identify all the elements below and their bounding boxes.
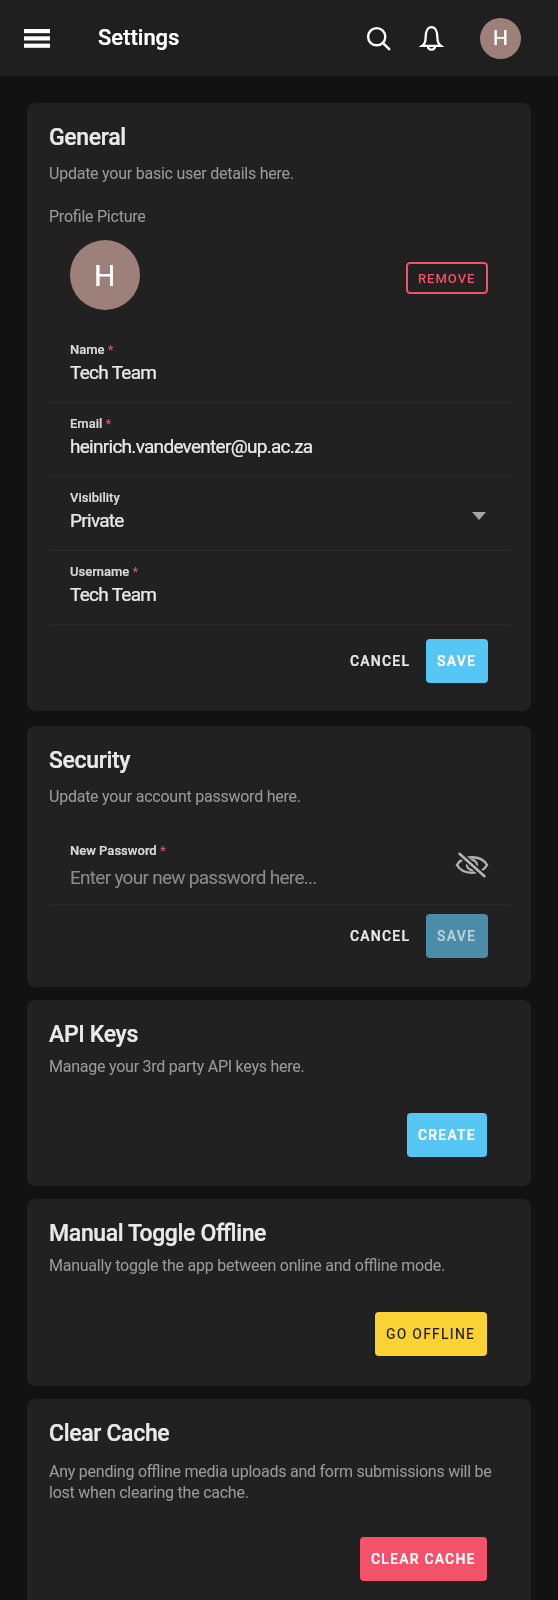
staticText: heinrich.vandeventer@up.ac.za (70, 435, 489, 457)
staticText: H (493, 26, 508, 51)
staticText: New Password * (70, 843, 166, 858)
staticText: REMOVE (418, 271, 476, 286)
button[interactable]: Open navigation menu (13, 14, 61, 62)
staticText: Manually toggle the app between online a… (49, 1256, 445, 1275)
button[interactable]: Account (480, 18, 521, 59)
button[interactable]: Email * (49, 403, 511, 477)
button[interactable]: GO OFFLINE (375, 1312, 487, 1356)
staticText: API Keys (49, 1021, 138, 1048)
button[interactable]: SAVE (426, 639, 488, 683)
staticText: SAVE (437, 928, 477, 944)
button[interactable]: CLEAR CACHE (360, 1537, 487, 1581)
button[interactable]: New Password * (49, 831, 511, 905)
button[interactable]: REMOVE (406, 262, 488, 294)
button[interactable]: Visibility (49, 477, 511, 551)
button[interactable]: CREATE (407, 1113, 487, 1157)
staticText: Name * (70, 342, 114, 357)
staticText: Settings (98, 25, 180, 51)
staticText: Update your account password here. (49, 787, 301, 806)
staticText: CREATE (418, 1127, 476, 1143)
staticText: Security (49, 747, 131, 774)
button[interactable]: CANCEL (339, 914, 419, 958)
staticText: Manual Toggle Offline (49, 1220, 267, 1247)
button[interactable]: Profile picture (70, 240, 140, 310)
staticText: Profile Picture (49, 207, 146, 226)
staticText: CANCEL (350, 653, 411, 669)
button[interactable]: Notifications (409, 16, 453, 60)
staticText: Clear Cache (49, 1420, 170, 1447)
button[interactable]: Show password (452, 845, 492, 885)
button[interactable]: SAVE (426, 914, 488, 958)
button[interactable]: Name * (49, 329, 511, 403)
staticText: Private (70, 509, 472, 531)
staticText: Tech Team (70, 583, 489, 605)
staticText: Manage your 3rd party API keys here. (49, 1057, 305, 1076)
staticText: Username * (70, 564, 139, 579)
staticText: Tech Team (70, 361, 489, 383)
staticText: SAVE (437, 653, 477, 669)
button[interactable]: CANCEL (339, 639, 419, 683)
staticText: Email * (70, 416, 112, 431)
staticText: Visibility (70, 490, 120, 505)
button[interactable]: Search (356, 16, 400, 60)
button[interactable]: Username * (49, 551, 511, 625)
staticText: Enter your new password here... (70, 866, 317, 888)
staticText: Any pending offline media uploads and fo… (49, 1462, 508, 1502)
staticText: General (49, 124, 126, 151)
staticText: H (94, 258, 116, 293)
staticText: CLEAR CACHE (371, 1551, 476, 1567)
staticText: CANCEL (350, 928, 411, 944)
staticText: Update your basic user details here. (49, 164, 294, 183)
staticText: GO OFFLINE (386, 1326, 476, 1342)
